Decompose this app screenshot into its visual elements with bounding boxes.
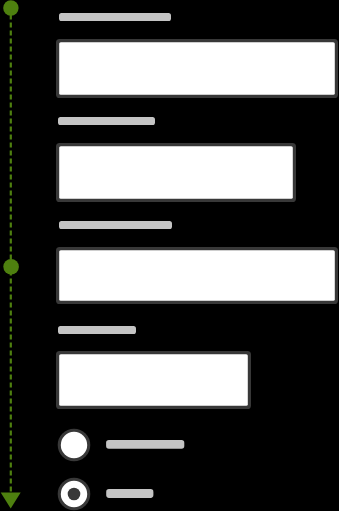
button[interactable]: Field three xyxy=(56,247,338,304)
button[interactable]: Field four xyxy=(56,351,251,409)
button[interactable]: Option two xyxy=(57,477,157,511)
button[interactable]: Field one xyxy=(56,39,338,98)
button[interactable]: Field two xyxy=(56,143,296,202)
button[interactable]: Option one xyxy=(57,428,188,462)
other: Form progress timeline xyxy=(0,0,339,511)
